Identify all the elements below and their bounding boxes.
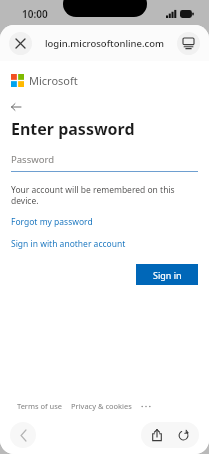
button[interactable]: Share xyxy=(147,425,167,445)
button[interactable]: Password xyxy=(11,153,198,172)
staticText: Sign in with another account xyxy=(11,238,126,250)
button[interactable]: Back xyxy=(11,101,29,113)
staticText: Password xyxy=(11,153,54,166)
staticText: 10:00 xyxy=(22,7,48,21)
button[interactable]: Sign in xyxy=(136,264,198,285)
button[interactable]: Sign in with another account xyxy=(11,238,126,250)
button[interactable]: Terms of use xyxy=(17,401,63,411)
staticText: Privacy & cookies xyxy=(71,401,132,411)
staticText: Your account will be remembered on this … xyxy=(11,184,198,206)
staticText: Sign in xyxy=(153,269,182,281)
button[interactable]: Forgot my password xyxy=(11,216,93,228)
staticText: Terms of use xyxy=(17,401,63,411)
staticText: Microsoft xyxy=(29,73,78,88)
staticText: login.microsoftonline.com xyxy=(45,37,165,50)
staticText: Enter password xyxy=(11,118,135,140)
button[interactable]: Close xyxy=(9,32,32,55)
button[interactable]: Reader view xyxy=(177,32,200,55)
staticText: Forgot my password xyxy=(11,216,93,228)
button[interactable]: Reload xyxy=(173,425,193,445)
button[interactable]: Back xyxy=(10,422,36,448)
button[interactable]: Privacy & cookies xyxy=(71,401,132,411)
button[interactable]: More options xyxy=(139,401,153,411)
